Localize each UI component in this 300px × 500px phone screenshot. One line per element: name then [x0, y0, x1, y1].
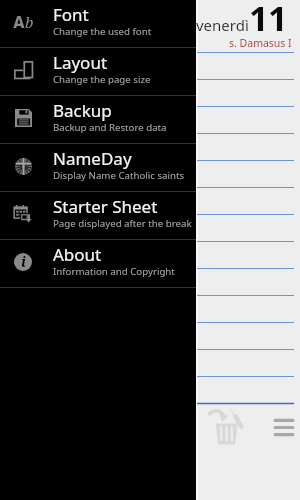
staticText: NameDay — [53, 147, 132, 170]
staticText: Information and Copyright — [53, 265, 175, 278]
staticText: A — [13, 11, 25, 28]
staticText: 11 — [249, 0, 287, 41]
staticText: Display Name Catholic saints — [53, 169, 185, 182]
staticText: Change the page size — [53, 73, 151, 86]
staticText: Backup and Restore data — [53, 121, 167, 134]
button[interactable]: A — [0, 0, 196, 48]
staticText: b — [25, 12, 34, 29]
button[interactable]: i — [0, 240, 196, 288]
button[interactable]: Backup — [0, 96, 196, 144]
staticText: venerdì — [196, 15, 249, 35]
staticText: About — [53, 243, 102, 266]
button[interactable]: Empty trash — [209, 408, 243, 446]
staticText: Backup — [53, 99, 112, 122]
staticText: Page displayed after the break — [53, 217, 192, 230]
staticText: Change the used font — [53, 25, 152, 38]
staticText: Layout — [53, 51, 108, 74]
staticText: i — [21, 252, 26, 270]
button[interactable]: NameDay — [0, 144, 196, 192]
staticText: Starter Sheet — [53, 195, 158, 218]
button[interactable]: List — [274, 418, 294, 437]
button[interactable]: Starter Sheet — [0, 192, 196, 240]
staticText: Font — [53, 3, 89, 26]
staticText: s. Damasus I — [229, 36, 292, 50]
button[interactable]: Layout — [0, 48, 196, 96]
